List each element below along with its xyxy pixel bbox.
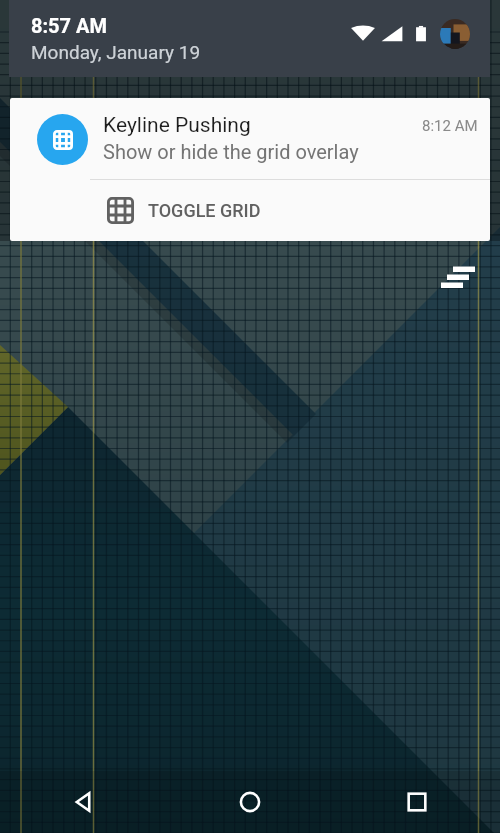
staticText: TOGGLE GRID (148, 200, 261, 221)
button[interactable]: User profile (440, 19, 470, 49)
button[interactable]: TOGGLE GRID (90, 180, 490, 241)
button[interactable]: Recent apps (333, 771, 500, 833)
button[interactable]: Back (0, 771, 166, 833)
button[interactable]: Home (166, 771, 333, 833)
staticText: 8:12 AM (422, 117, 478, 135)
button[interactable]: Keyline Pushing (10, 98, 490, 241)
staticText: 8:57 AM (31, 14, 107, 37)
staticText: Keyline Pushing (103, 113, 251, 138)
staticText: Show or hide the grid overlay (103, 140, 359, 163)
staticText: Monday, January 19 (31, 41, 201, 63)
